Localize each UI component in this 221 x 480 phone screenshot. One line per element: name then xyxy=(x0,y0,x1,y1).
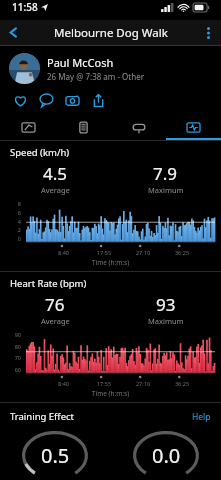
button[interactable]: More options xyxy=(195,20,221,45)
button[interactable]: Photos xyxy=(61,89,83,111)
staticText: Average xyxy=(41,185,70,195)
button[interactable]: Like xyxy=(9,89,31,111)
staticText: 93 xyxy=(156,293,176,316)
staticText: 8:40 xyxy=(49,380,78,387)
staticText: 27:10 xyxy=(129,249,157,256)
staticText: 8 xyxy=(0,200,21,207)
staticText: Help xyxy=(192,411,211,423)
button[interactable]: Help xyxy=(192,411,211,423)
staticText: 17:55 xyxy=(90,380,118,387)
staticText: Melbourne Dog Walk xyxy=(54,25,168,41)
staticText: 11:58 xyxy=(12,0,38,14)
staticText: Training Effect xyxy=(10,410,74,423)
staticText: 6 xyxy=(0,209,21,216)
staticText: 80 xyxy=(0,343,21,350)
staticText: 60 xyxy=(0,366,21,373)
staticText: 4 xyxy=(0,218,21,225)
staticText: Maximum xyxy=(148,185,184,195)
button[interactable]: Map xyxy=(0,115,56,140)
button[interactable]: Details xyxy=(56,115,111,140)
staticText: 76 xyxy=(45,293,65,316)
staticText: Time (h:m:s) xyxy=(0,389,221,398)
staticText: Maximum xyxy=(148,316,184,326)
staticText: Heart Rate (bpm) xyxy=(10,277,87,290)
staticText: Speed (km/h) xyxy=(10,146,70,159)
staticText: 7.9 xyxy=(153,162,178,185)
staticText: 8:40 xyxy=(49,249,78,256)
staticText: 27:10 xyxy=(129,380,157,387)
staticText: 0.0 xyxy=(152,442,181,469)
staticText: 36:25 xyxy=(168,249,196,256)
button[interactable]: Comment xyxy=(35,89,57,111)
staticText: 0.5 xyxy=(41,442,70,469)
staticText: 4.5 xyxy=(43,162,68,185)
staticText: 90 xyxy=(0,331,21,338)
button[interactable]: Laps xyxy=(111,115,166,140)
staticText: Paul McCosh xyxy=(47,55,114,70)
staticText: 2 xyxy=(0,226,21,233)
staticText: 0 xyxy=(0,235,21,242)
staticText: 26 May @ 7:38 am - Other xyxy=(47,71,144,82)
button[interactable]: Back xyxy=(0,20,26,45)
staticText: 70 xyxy=(0,354,21,361)
button[interactable]: Share xyxy=(87,89,109,111)
staticText: Average xyxy=(41,316,70,326)
staticText: Time (h:m:s) xyxy=(0,258,221,267)
staticText: 17:55 xyxy=(90,249,118,256)
staticText: 36:25 xyxy=(168,380,196,387)
button[interactable]: Charts xyxy=(166,115,221,140)
